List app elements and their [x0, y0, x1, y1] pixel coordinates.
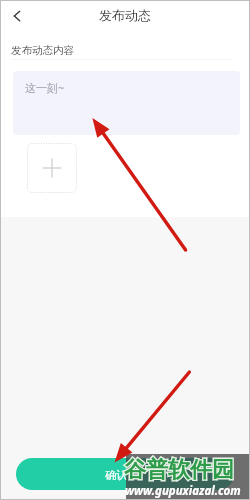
button[interactable]: 确认 — [16, 458, 234, 490]
staticText: 发布动态 — [0, 7, 250, 23]
staticText: 发布动态内容 — [11, 44, 74, 57]
staticText: 这一刻~ — [25, 80, 65, 95]
staticText: 谷普软件园 — [124, 456, 234, 484]
staticText: 谷普软件园 — [124, 456, 234, 484]
button[interactable]: 这一刻~ — [13, 71, 240, 135]
button[interactable]: Back — [4, 3, 29, 28]
staticText: www.gupuxiazal.com — [125, 483, 241, 499]
button[interactable]: Add image — [27, 143, 77, 193]
staticText: 确认 — [105, 468, 127, 482]
